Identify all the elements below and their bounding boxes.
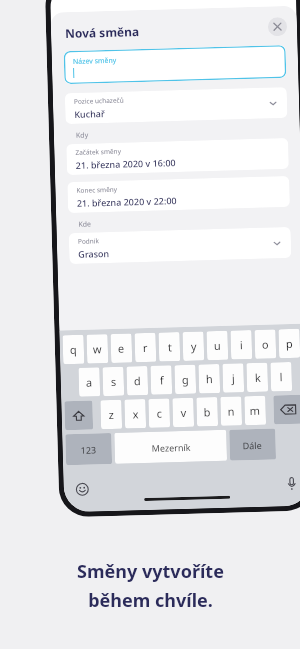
staticText: t [168,339,172,354]
button[interactable]: o [254,329,276,359]
button[interactable]: s [102,367,124,396]
button[interactable]: Podnik [69,227,291,264]
staticText: 21. března 2020 v 16:00 [76,156,176,171]
button[interactable]: p [278,329,300,358]
button[interactable]: Emoji [74,481,90,497]
staticText: w [93,341,102,356]
staticText: Kde [78,219,92,230]
staticText: Dále [242,439,263,451]
button[interactable]: l [270,362,292,391]
button[interactable]: z [100,400,122,429]
button[interactable]: n [220,396,242,426]
staticText: x [132,406,139,421]
button[interactable]: f [150,365,172,395]
staticText: h [206,371,213,386]
button[interactable]: y [182,331,204,361]
button[interactable]: r [134,333,156,362]
staticText: Začátek směny [75,147,121,157]
button[interactable]: x [124,399,146,429]
staticText: d [134,373,141,388]
staticText: o [262,337,269,352]
staticText: Podnik [78,236,100,246]
button[interactable]: Diktování [283,475,300,491]
button[interactable]: Dále [229,428,276,461]
staticText: r [143,340,148,355]
button[interactable]: e [110,333,132,363]
button[interactable]: h [198,364,220,393]
staticText: 21. března 2020 v 22:00 [77,194,177,209]
staticText: v [180,405,187,420]
staticText: Nová směna [65,23,140,41]
staticText: b [203,404,211,419]
staticText: c [156,406,163,421]
button[interactable]: k [246,363,268,392]
staticText: j [232,370,235,386]
button[interactable]: Mezerník [114,430,227,464]
staticText: q [70,342,77,357]
button[interactable]: a [78,367,100,397]
staticText: z [108,407,115,422]
staticText: u [214,338,221,353]
button[interactable]: Začátek směny [66,138,289,175]
staticText: m [249,403,261,418]
staticText: Směny vytvoříte [77,559,224,584]
staticText: l [279,369,283,384]
staticText: Grason [78,247,109,260]
button[interactable]: c [148,398,170,428]
button[interactable]: i [230,330,252,360]
button[interactable]: u [206,331,228,360]
button[interactable]: j [222,363,244,393]
staticText: Pozice uchazečů [74,95,124,106]
staticText: f [160,372,164,388]
staticText: y [191,339,197,354]
button[interactable]: 123 [65,433,112,465]
button[interactable]: t [158,332,180,362]
button[interactable]: d [126,366,148,396]
staticText: 123 [80,443,97,456]
button[interactable]: b [196,397,218,427]
staticText: p [286,336,293,351]
button[interactable]: Zavřít [268,17,287,36]
button[interactable]: Konec směny [67,176,290,213]
staticText: Název směny [73,56,117,67]
button[interactable]: Shift [64,400,93,430]
button[interactable]: v [172,398,194,427]
staticText: g [182,372,189,387]
button[interactable]: g [174,365,196,394]
staticText: i [240,337,243,352]
staticText: Mezerník [151,441,191,454]
button[interactable]: m [244,396,266,425]
button[interactable]: Pozice uchazečů [65,87,287,124]
staticText: e [118,341,125,356]
button[interactable]: Název směny [64,45,286,84]
staticText: Kdy [76,130,89,141]
staticText: k [254,370,261,385]
staticText: Konec směny [76,185,117,195]
staticText: Kuchař [74,107,105,120]
staticText: n [227,403,235,419]
staticText: během chvíle. [88,588,213,613]
button[interactable]: Smazat [273,395,300,424]
staticText: a [86,374,93,390]
button[interactable]: w [86,334,108,364]
button[interactable]: q [62,335,84,364]
staticText: s [111,374,117,389]
